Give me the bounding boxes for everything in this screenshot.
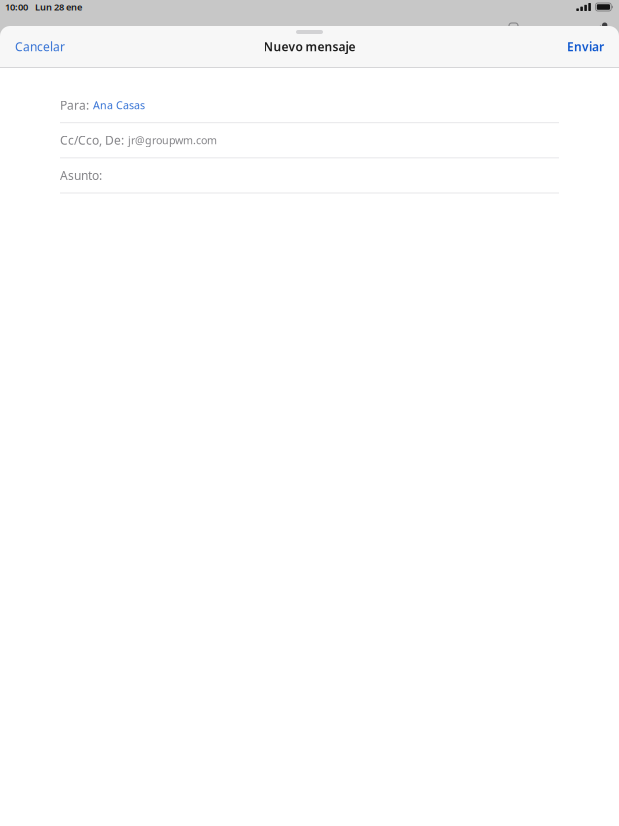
button[interactable]: Cancelar: [0, 29, 77, 63]
staticText: 10:00: [5, 1, 28, 13]
staticText: jr@groupwm.com: [128, 133, 217, 147]
staticText: Cancelar: [15, 38, 65, 54]
staticText: Ana Casas: [93, 98, 145, 112]
staticText: Enviar: [567, 38, 604, 54]
button[interactable]: Cc/Cco, De:: [60, 123, 559, 158]
staticText: Cc/Cco, De:: [60, 132, 124, 148]
button[interactable]: Asunto:: [60, 158, 559, 194]
button[interactable]: Para:: [60, 88, 559, 123]
staticText: Lun 28 ene: [35, 1, 82, 13]
staticText: Asunto:: [60, 167, 102, 183]
button[interactable]: Enviar: [555, 29, 619, 63]
staticText: Para:: [60, 97, 89, 113]
staticText: Nuevo mensaje: [263, 38, 355, 54]
